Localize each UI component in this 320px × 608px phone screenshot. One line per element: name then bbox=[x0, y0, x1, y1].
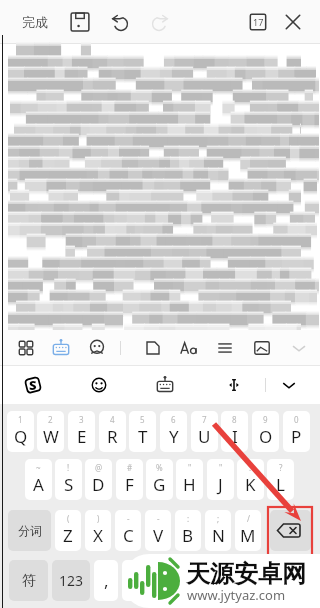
button[interactable]: @ bbox=[85, 459, 112, 500]
button[interactable]: More bbox=[287, 336, 311, 360]
staticText: S bbox=[64, 473, 74, 496]
staticText: N bbox=[212, 524, 225, 547]
button[interactable] bbox=[122, 560, 242, 601]
staticText: L bbox=[276, 473, 285, 496]
staticText: 分词 bbox=[18, 523, 42, 538]
button[interactable]: ) bbox=[85, 510, 111, 551]
button[interactable]: , bbox=[94, 560, 118, 601]
staticText: C bbox=[123, 524, 134, 547]
button[interactable]: Image bbox=[250, 336, 274, 360]
button[interactable]: # bbox=[116, 459, 143, 500]
staticText: " bbox=[188, 462, 192, 473]
button[interactable]: Cursor bbox=[222, 373, 246, 397]
button[interactable]: Smiley bbox=[87, 373, 111, 397]
staticText: Y bbox=[169, 425, 179, 448]
staticText: % bbox=[156, 462, 163, 473]
button[interactable]: - bbox=[145, 510, 171, 551]
button[interactable]: Hide keyboard bbox=[277, 373, 301, 397]
button[interactable]: " bbox=[176, 459, 203, 500]
button[interactable]: 4 bbox=[99, 411, 126, 452]
button[interactable]: Page bbox=[141, 336, 165, 360]
staticText: V bbox=[153, 524, 164, 547]
staticText: 2 bbox=[48, 414, 53, 425]
button[interactable]: 7 bbox=[191, 411, 218, 452]
button[interactable]: Save bbox=[68, 10, 92, 34]
button[interactable]: Insert date bbox=[246, 10, 270, 34]
button[interactable]: 符 bbox=[9, 560, 48, 601]
staticText: @ bbox=[95, 462, 103, 473]
button[interactable]: ~ bbox=[25, 459, 52, 500]
staticText: R bbox=[107, 425, 118, 448]
staticText: 天源安卓网 bbox=[186, 559, 306, 589]
staticText: : bbox=[187, 513, 190, 524]
staticText: " bbox=[219, 462, 223, 473]
button[interactable]: 分词 bbox=[8, 510, 51, 551]
button[interactable]: Emoji bbox=[85, 336, 109, 360]
button[interactable] bbox=[246, 560, 311, 601]
button[interactable]: Undo bbox=[108, 10, 132, 34]
button[interactable]: Close bbox=[281, 10, 305, 34]
button[interactable]: 8 bbox=[221, 411, 248, 452]
staticText: A bbox=[33, 473, 44, 496]
staticText: 17 bbox=[253, 16, 264, 28]
staticText: F bbox=[125, 473, 134, 496]
staticText: S bbox=[29, 376, 37, 394]
button[interactable]: 123 bbox=[52, 560, 90, 601]
button[interactable]: 3 bbox=[68, 411, 95, 452]
button[interactable]: - bbox=[115, 510, 141, 551]
button[interactable]: 0 bbox=[283, 411, 310, 452]
staticText: I bbox=[232, 425, 238, 448]
button[interactable]: Keyboard layout bbox=[153, 373, 177, 397]
staticText: - bbox=[157, 513, 160, 524]
button[interactable]: 2 bbox=[37, 411, 64, 452]
button[interactable]: : bbox=[175, 510, 201, 551]
staticText: 3 bbox=[79, 414, 84, 425]
staticText: ( bbox=[67, 513, 70, 524]
button[interactable]: List bbox=[213, 336, 237, 360]
button[interactable]: 5 bbox=[129, 411, 156, 452]
staticText: M bbox=[240, 524, 256, 547]
button[interactable]: : bbox=[237, 459, 264, 500]
button[interactable]: ? bbox=[267, 459, 294, 500]
staticText: 1 bbox=[18, 414, 23, 425]
button[interactable]: Redo bbox=[148, 10, 172, 34]
staticText: ? bbox=[279, 462, 283, 473]
staticText: ~ bbox=[36, 462, 41, 473]
button[interactable]: Delete bbox=[270, 510, 311, 551]
button[interactable]: ; bbox=[205, 510, 231, 551]
staticText: 符 bbox=[22, 572, 36, 590]
staticText: T bbox=[138, 425, 148, 448]
staticText: 7 bbox=[202, 414, 207, 425]
staticText: P bbox=[291, 425, 302, 448]
button[interactable]: % bbox=[146, 459, 173, 500]
button[interactable]: Apps bbox=[14, 336, 38, 360]
staticText: U bbox=[198, 425, 211, 448]
button[interactable]: Sogou input bbox=[21, 373, 45, 397]
button[interactable]: ( bbox=[55, 510, 81, 551]
staticText: 完成 bbox=[22, 14, 48, 30]
button[interactable]: 完成 bbox=[10, 6, 60, 38]
button[interactable]: 6 bbox=[160, 411, 187, 452]
staticText: H bbox=[183, 473, 196, 496]
staticText: 9 bbox=[263, 414, 268, 425]
button[interactable]: Keyboard bbox=[49, 336, 73, 360]
staticText: Q bbox=[14, 425, 28, 448]
staticText: 5 bbox=[140, 414, 145, 425]
staticText: G bbox=[153, 473, 166, 496]
button[interactable]: " bbox=[207, 459, 234, 500]
button[interactable]: ! bbox=[55, 459, 82, 500]
button[interactable]: 9 bbox=[252, 411, 279, 452]
staticText: : bbox=[249, 462, 252, 473]
button[interactable]: / bbox=[235, 510, 261, 551]
button[interactable]: Font bbox=[176, 336, 200, 360]
staticText: B bbox=[182, 524, 194, 547]
button[interactable]: 1 bbox=[7, 411, 34, 452]
staticText: ! bbox=[67, 462, 70, 473]
staticText: D bbox=[92, 473, 105, 496]
staticText: - bbox=[127, 513, 130, 524]
staticText: W bbox=[43, 425, 59, 448]
staticText: ) bbox=[97, 513, 100, 524]
staticText: O bbox=[259, 425, 273, 448]
staticText: K bbox=[245, 473, 256, 496]
staticText: www.jytyaz.com bbox=[187, 586, 286, 604]
